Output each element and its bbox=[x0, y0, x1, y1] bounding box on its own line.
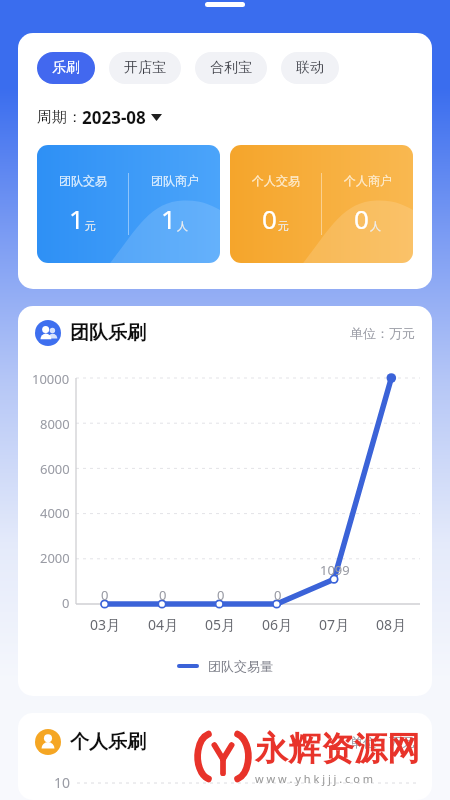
staticText: 08月 bbox=[376, 615, 407, 634]
staticText: 个人交易 bbox=[252, 173, 300, 188]
button[interactable]: 团队交易 bbox=[37, 145, 220, 263]
staticText: 团队交易量 bbox=[208, 658, 273, 674]
staticText: 团队交易 bbox=[59, 173, 107, 188]
button[interactable]: 开店宝 bbox=[109, 52, 181, 84]
button[interactable]: 联动 bbox=[281, 52, 339, 84]
staticText: 人 bbox=[370, 219, 381, 233]
staticText: 2023-08 bbox=[82, 106, 146, 129]
staticText: 0 bbox=[62, 594, 70, 612]
button[interactable]: 个人交易 bbox=[230, 145, 413, 263]
staticText: 0 bbox=[354, 201, 369, 236]
staticText: 05月 bbox=[205, 615, 236, 634]
staticText: 个人乐刷 bbox=[70, 730, 146, 754]
staticText: 开店宝 bbox=[124, 59, 166, 77]
staticText: 单位：万元 bbox=[350, 734, 415, 750]
staticText: 周期： bbox=[37, 108, 82, 127]
other: 团队乐刷 bbox=[35, 320, 61, 346]
staticText: 2000 bbox=[40, 549, 70, 567]
staticText: 10000 bbox=[373, 378, 411, 383]
staticText: 团队商户 bbox=[151, 173, 199, 188]
staticText: 6000 bbox=[40, 460, 70, 478]
staticText: 10000 bbox=[32, 370, 70, 388]
staticText: 元 bbox=[85, 219, 96, 233]
other: 个人乐刷 bbox=[35, 729, 61, 755]
staticText: 联动 bbox=[296, 59, 324, 77]
staticText: 1099 bbox=[320, 561, 350, 579]
staticText: 04月 bbox=[148, 615, 179, 634]
staticText: 4000 bbox=[40, 504, 70, 522]
staticText: 永辉资源网 bbox=[255, 728, 420, 770]
staticText: 8000 bbox=[40, 415, 70, 433]
button[interactable]: 合利宝 bbox=[195, 52, 267, 84]
staticText: 元 bbox=[278, 219, 289, 233]
staticText: 0 bbox=[274, 586, 282, 604]
button[interactable]: 乐刷 bbox=[37, 52, 95, 84]
staticText: 1 bbox=[69, 201, 84, 236]
staticText: 1 bbox=[161, 201, 176, 236]
staticText: 07月 bbox=[319, 615, 350, 634]
staticText: 03月 bbox=[90, 615, 121, 634]
button[interactable]: 周期： bbox=[37, 106, 162, 129]
staticText: 团队乐刷 bbox=[70, 321, 146, 345]
staticText: 0 bbox=[101, 586, 109, 604]
staticText: 0 bbox=[159, 586, 167, 604]
staticText: 单位：万元 bbox=[350, 325, 415, 341]
staticText: 人 bbox=[177, 219, 188, 233]
staticText: 06月 bbox=[262, 615, 293, 634]
staticText: 合利宝 bbox=[210, 59, 252, 77]
staticText: 10 bbox=[54, 773, 71, 792]
staticText: 个人商户 bbox=[344, 173, 392, 188]
staticText: 0 bbox=[262, 201, 277, 236]
staticText: 0 bbox=[217, 586, 225, 604]
staticText: 乐刷 bbox=[52, 59, 80, 77]
staticText: w w w . y h k j j j . c o m bbox=[255, 771, 374, 786]
